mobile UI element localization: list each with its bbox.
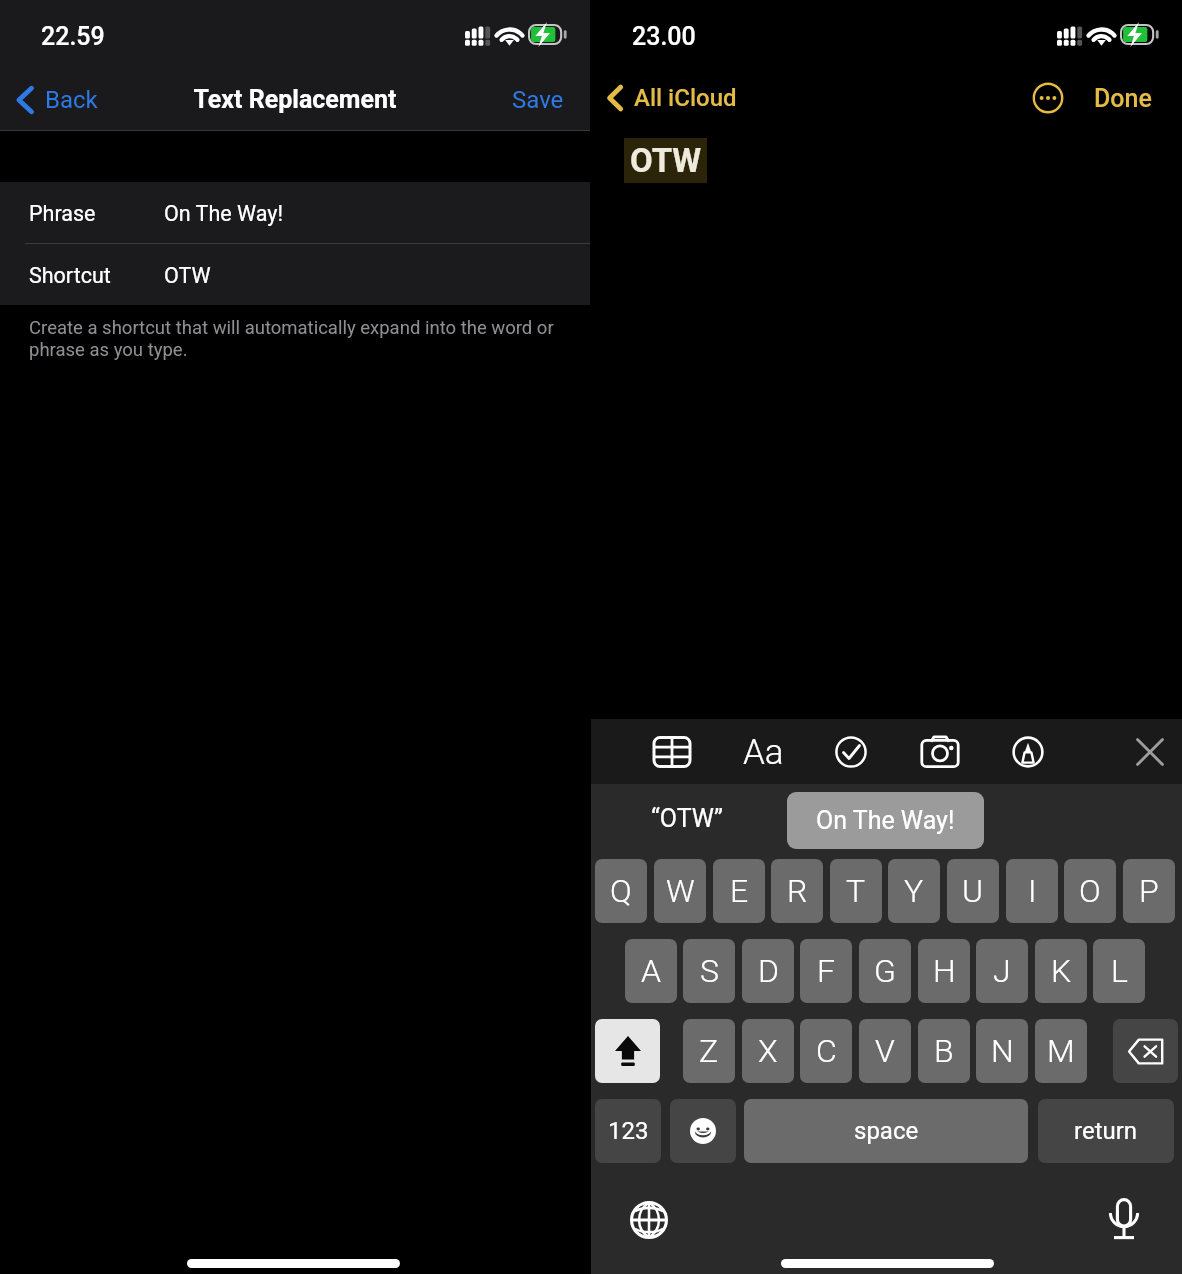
staticText: OTW — [164, 263, 211, 288]
button[interactable]: J — [976, 939, 1028, 1003]
staticText: T — [846, 872, 866, 910]
button[interactable]: X — [742, 1019, 794, 1083]
staticText: Back — [45, 86, 98, 114]
button[interactable]: K — [1035, 939, 1087, 1003]
button[interactable]: Aa — [739, 729, 787, 775]
button[interactable]: L — [1093, 939, 1145, 1003]
button[interactable]: All iCloud — [599, 74, 747, 122]
staticText: space — [854, 1117, 919, 1145]
staticText: M — [1047, 1032, 1075, 1070]
button[interactable]: H — [918, 939, 970, 1003]
staticText: 22.59 — [41, 22, 161, 51]
button[interactable]: Save — [498, 76, 578, 124]
button[interactable]: S — [683, 939, 735, 1003]
staticText: Z — [699, 1032, 719, 1070]
staticText: G — [874, 952, 896, 990]
staticText: O — [1079, 872, 1101, 910]
staticText: V — [875, 1032, 895, 1070]
button[interactable]: R — [771, 859, 823, 923]
button[interactable]: Hide keyboard — [1126, 729, 1174, 775]
staticText: Text Replacement — [0, 85, 590, 114]
staticText: Y — [904, 872, 924, 910]
button[interactable]: 123 — [595, 1099, 661, 1163]
staticText: Save — [512, 86, 564, 114]
button[interactable]: Markup — [1004, 729, 1052, 775]
button[interactable]: M — [1035, 1019, 1087, 1083]
staticText: L — [1111, 952, 1128, 990]
button[interactable]: A — [625, 939, 677, 1003]
button[interactable]: Camera — [916, 729, 964, 775]
button[interactable]: P — [1123, 859, 1175, 923]
staticText: C — [816, 1032, 837, 1070]
button[interactable]: Dictation — [1106, 1198, 1142, 1242]
staticText: “OTW” — [651, 804, 851, 833]
button[interactable]: Delete — [1113, 1019, 1178, 1083]
staticText: On The Way! — [816, 806, 955, 835]
button[interactable]: Back — [8, 76, 108, 124]
staticText: 23.00 — [632, 22, 752, 51]
staticText: OTW — [630, 141, 702, 180]
staticText: return — [1074, 1117, 1138, 1145]
staticText: I — [1028, 872, 1037, 910]
button[interactable]: Checklist — [827, 729, 875, 775]
button[interactable]: E — [713, 859, 765, 923]
button[interactable]: Z — [683, 1019, 735, 1083]
button[interactable]: D — [742, 939, 794, 1003]
button[interactable]: Shortcut — [0, 244, 590, 305]
staticText: Done — [1094, 84, 1152, 113]
staticText: Phrase — [29, 201, 96, 226]
staticText: All iCloud — [634, 84, 737, 112]
staticText: F — [817, 952, 835, 990]
button[interactable]: On The Way! — [787, 792, 984, 849]
button[interactable]: U — [947, 859, 999, 923]
button[interactable]: Done — [1082, 75, 1164, 121]
button[interactable]: B — [918, 1019, 970, 1083]
staticText: Q — [610, 872, 632, 910]
staticText: U — [962, 872, 984, 910]
staticText: B — [934, 1032, 954, 1070]
staticText: J — [993, 952, 1011, 990]
button[interactable]: O — [1064, 859, 1116, 923]
staticText: K — [1051, 952, 1072, 990]
button[interactable]: W — [654, 859, 706, 923]
staticText: S — [700, 952, 719, 990]
staticText: X — [758, 1032, 778, 1070]
staticText: 123 — [608, 1117, 649, 1145]
staticText: R — [787, 872, 808, 910]
button[interactable]: I — [1006, 859, 1058, 923]
staticText: D — [758, 952, 779, 990]
button[interactable]: Y — [888, 859, 940, 923]
button[interactable]: Phrase — [0, 182, 590, 243]
button[interactable]: T — [830, 859, 882, 923]
button[interactable]: C — [800, 1019, 852, 1083]
button[interactable]: G — [859, 939, 911, 1003]
staticText: Shortcut — [29, 263, 111, 288]
staticText: E — [730, 872, 749, 910]
button[interactable]: space — [744, 1099, 1028, 1163]
button[interactable]: Shift — [595, 1019, 660, 1083]
button[interactable]: Switch keyboard — [630, 1201, 668, 1239]
staticText: H — [933, 952, 956, 990]
button[interactable]: V — [859, 1019, 911, 1083]
staticText: Aa — [743, 732, 784, 773]
staticText: W — [666, 872, 695, 910]
staticText: N — [991, 1032, 1014, 1070]
staticText: On The Way! — [164, 201, 283, 226]
staticText: A — [641, 952, 661, 990]
button[interactable]: More options — [1025, 75, 1071, 121]
button[interactable]: Emoji — [670, 1099, 736, 1163]
button[interactable]: Insert table — [648, 729, 696, 775]
button[interactable]: Q — [595, 859, 647, 923]
button[interactable]: F — [800, 939, 852, 1003]
button[interactable]: return — [1038, 1099, 1174, 1163]
button[interactable]: N — [976, 1019, 1028, 1083]
staticText: Create a shortcut that will automaticall… — [29, 317, 555, 360]
staticText: P — [1139, 872, 1159, 910]
